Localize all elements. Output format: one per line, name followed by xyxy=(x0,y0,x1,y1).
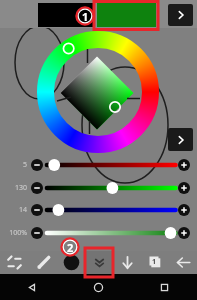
button[interactable]: Decrease 130 xyxy=(31,182,43,194)
button[interactable]: Increase 5 xyxy=(178,159,190,171)
button[interactable]: Back xyxy=(0,274,65,300)
button[interactable]: Expand xyxy=(168,128,193,151)
staticText: 1 xyxy=(152,257,157,267)
staticText: 100% xyxy=(9,228,27,238)
button[interactable]: Decrease 14 xyxy=(31,204,43,216)
button[interactable]: Recents xyxy=(131,274,197,300)
staticText: 14 xyxy=(18,205,27,215)
button[interactable]: Increase 130 xyxy=(178,182,190,194)
button[interactable]: Increase 100% xyxy=(178,227,190,239)
button[interactable]: Home xyxy=(65,274,131,300)
staticText: 1 xyxy=(82,9,89,24)
staticText: 5 xyxy=(22,160,27,170)
button[interactable]: Transform xyxy=(0,251,29,274)
button[interactable]: Decrease 100% xyxy=(31,227,43,239)
button[interactable]: Back xyxy=(169,251,197,274)
button[interactable]: Decrease 5 xyxy=(31,159,43,171)
button[interactable]: Increase 14 xyxy=(178,204,190,216)
button[interactable]: Download xyxy=(113,251,141,274)
button[interactable]: Collapse xyxy=(85,251,113,274)
staticText: 130 xyxy=(14,183,27,193)
staticText: 2 xyxy=(67,240,74,255)
button[interactable]: Layers xyxy=(141,251,169,274)
button[interactable]: Expand xyxy=(168,4,193,26)
button[interactable]: Brush xyxy=(29,251,57,274)
button[interactable]: Previous colour xyxy=(38,3,95,27)
button[interactable]: Colour xyxy=(57,251,85,274)
